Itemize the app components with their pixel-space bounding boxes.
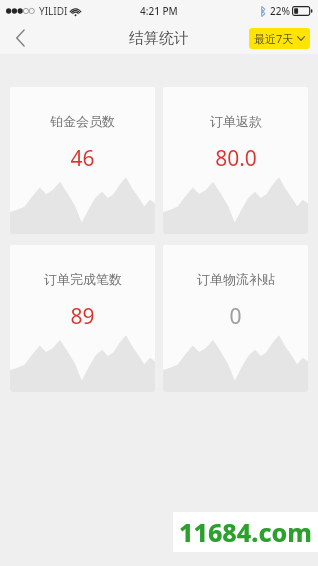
- button[interactable]: 订单物流补贴: [163, 245, 308, 392]
- staticText: YILIDI: [39, 4, 68, 18]
- staticText: 最近7天: [254, 31, 294, 46]
- staticText: 铂金会员数: [50, 113, 115, 129]
- staticText: 46: [70, 144, 95, 173]
- staticText: 80.0: [215, 144, 257, 173]
- staticText: 11684.com: [179, 515, 312, 549]
- button[interactable]: 订单返款: [163, 87, 308, 234]
- staticText: 89: [70, 302, 95, 331]
- staticText: 22%: [270, 4, 290, 18]
- staticText: 4:21 PM: [140, 4, 178, 18]
- button[interactable]: 最近7天: [249, 28, 310, 49]
- staticText: 订单完成笔数: [44, 271, 122, 287]
- staticText: 订单返款: [210, 113, 262, 129]
- button[interactable]: 订单完成笔数: [10, 245, 155, 392]
- staticText: 结算统计: [129, 29, 189, 48]
- staticText: 0: [229, 302, 242, 331]
- button[interactable]: 铂金会员数: [10, 87, 155, 234]
- button[interactable]: Back: [0, 22, 40, 54]
- staticText: 订单物流补贴: [197, 271, 275, 287]
